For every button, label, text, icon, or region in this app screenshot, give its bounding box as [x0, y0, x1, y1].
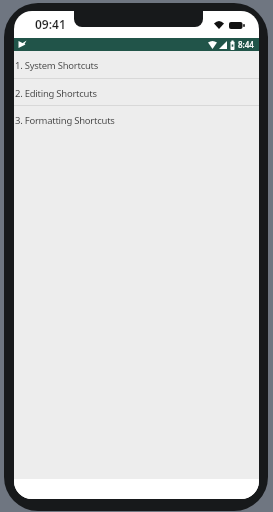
- button[interactable]: 2. Editing Shortcuts: [14, 79, 259, 105]
- staticText: 09:41: [35, 16, 66, 32]
- staticText: 2. Editing Shortcuts: [15, 87, 97, 100]
- staticText: 1. System Shortcuts: [15, 59, 99, 72]
- button[interactable]: 3. Formatting Shortcuts: [14, 106, 259, 133]
- staticText: 3. Formatting Shortcuts: [15, 114, 115, 127]
- staticText: 8:44: [238, 39, 254, 50]
- button[interactable]: 1. System Shortcuts: [14, 51, 259, 78]
